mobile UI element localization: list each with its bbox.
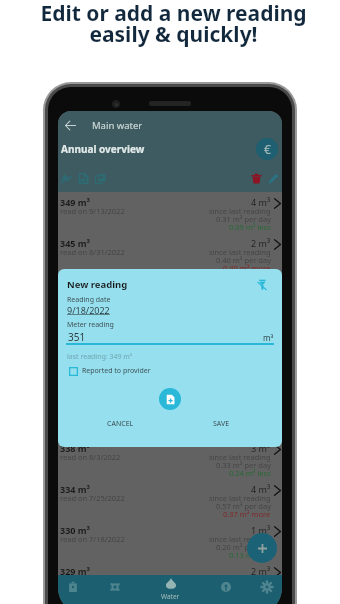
button[interactable]: CANCEL [102, 416, 138, 432]
staticText: Annual overview [61, 142, 145, 156]
button[interactable]: 9/18/2022 [67, 304, 110, 316]
button[interactable]: 340 m³ [58, 397, 282, 438]
staticText: since last reading [209, 575, 271, 585]
staticText: 0.40 m³ per day [216, 255, 271, 265]
staticText: read on 9/13/2022 [60, 206, 125, 216]
staticText: 0.13 m³ less [229, 550, 271, 560]
staticText: 0.36 m³ per day [216, 337, 271, 347]
button[interactable]: Gas [58, 575, 88, 604]
button[interactable]: Reported to provider [69, 366, 151, 376]
staticText: 342 m³ [60, 319, 90, 331]
staticText: 345 m³ [60, 237, 90, 249]
button[interactable]: Water [141, 575, 199, 604]
staticText: 0.09 m³ less [229, 222, 271, 232]
staticText: 349 m³ [60, 196, 90, 208]
staticText: 0.02 m³ more [223, 591, 271, 601]
button[interactable]: 334 m³ [58, 479, 282, 520]
staticText: read on 7/18/2022 [60, 534, 125, 544]
button[interactable]: Not reported [250, 273, 272, 295]
staticText: 0.37 m³ more [223, 509, 271, 519]
staticText: read on 8/3/2022 [60, 452, 121, 462]
staticText: Reported to provider [82, 366, 151, 376]
button[interactable]: Costs [256, 138, 278, 160]
staticText: read on 8/22/2022 [60, 329, 125, 339]
staticText: 329 m³ [60, 565, 90, 577]
staticText: 338 m³ [60, 442, 90, 454]
staticText: read on 7/13/2022 [60, 575, 125, 585]
staticText: 3 m³ [251, 442, 271, 454]
button[interactable]: Statistics [58, 170, 75, 187]
button[interactable]: Export PDF [92, 170, 109, 187]
staticText: m³ [263, 332, 274, 343]
staticText: since last reading [209, 288, 271, 298]
button[interactable]: Edit [265, 170, 282, 187]
button[interactable]: Back [58, 113, 82, 137]
staticText: 0.28 m³ per day [216, 583, 271, 593]
staticText: since last reading [209, 452, 271, 462]
button[interactable]: Attach document [159, 388, 181, 410]
staticText: read on 8/17/2022 [60, 370, 125, 380]
staticText: 0.33 m³ per day [216, 460, 271, 470]
button[interactable]: 343 m³ [58, 274, 282, 315]
staticText: Water [161, 592, 180, 601]
button[interactable]: 349 m³ [58, 192, 282, 233]
staticText: 1 m³ [251, 524, 271, 536]
button[interactable]: SAVE [207, 416, 235, 432]
button[interactable]: Add reading [247, 533, 277, 563]
staticText: 330 m³ [60, 524, 90, 536]
button[interactable]: Settings [252, 575, 282, 604]
staticText: 0.40 m³ more [223, 263, 271, 273]
staticText: read on 8/26/2022 [60, 288, 125, 298]
button[interactable]: 330 m³ [58, 520, 282, 561]
button[interactable]: 338 m³ [58, 438, 282, 479]
staticText: 2 m³ [251, 237, 271, 249]
button[interactable]: 329 m³ [58, 561, 282, 602]
staticText: New reading [67, 278, 128, 291]
staticText: 4 m³ [251, 483, 271, 495]
button[interactable]: Heating [199, 575, 252, 604]
staticText: 0.20 m³ per day [216, 542, 271, 552]
staticText: since last reading [209, 329, 271, 339]
staticText: since last reading [209, 247, 271, 257]
staticText: CANCEL [107, 419, 134, 429]
button[interactable]: Export CSV [75, 170, 92, 187]
button[interactable]: 342 m³ [58, 315, 282, 356]
staticText: SAVE [213, 419, 230, 429]
staticText: 0.29 m³ per day [216, 419, 271, 429]
button[interactable]: Electricity [88, 575, 141, 604]
staticText: 0.24 m³ less [229, 468, 271, 478]
staticText: 0.31 m³ per day [216, 214, 271, 224]
staticText: 4 m³ [251, 196, 271, 208]
staticText: last reading: 349 m³ [67, 352, 133, 362]
staticText: Edit or add a new reading [40, 0, 307, 28]
staticText: Main water [92, 119, 143, 132]
button[interactable]: 345 m³ [58, 233, 282, 274]
staticText: 2 m³ [251, 565, 271, 577]
button[interactable]: Delete [248, 170, 265, 187]
staticText: 0.57 m³ per day [216, 501, 271, 511]
staticText: read on 7/25/2022 [60, 493, 125, 503]
staticText: since last reading [209, 534, 271, 544]
staticText: 351 [68, 330, 86, 344]
staticText: easily & quickly! [89, 20, 258, 49]
staticText: 334 m³ [60, 483, 90, 495]
staticText: since last reading [209, 493, 271, 503]
button[interactable]: 341 m³ [58, 356, 282, 397]
staticText: read on 8/31/2022 [60, 247, 125, 257]
staticText: 343 m³ [60, 278, 90, 290]
staticText: 5 m³ [251, 278, 271, 290]
staticText: since last reading [209, 206, 271, 216]
